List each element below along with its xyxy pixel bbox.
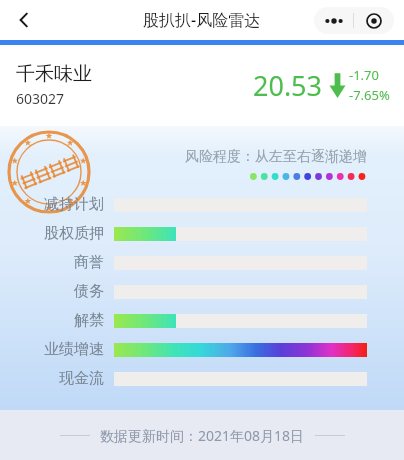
staticText: 20.53: [253, 67, 323, 104]
button[interactable]: 债务: [0, 277, 404, 306]
staticText: 业绩增速: [44, 340, 104, 359]
button[interactable]: 业绩增速: [0, 335, 404, 364]
staticText: 股权质押: [44, 224, 104, 243]
button[interactable]: More: [314, 7, 353, 34]
button[interactable]: 减持计划: [0, 190, 404, 219]
staticText: -1.70: [349, 66, 379, 84]
staticText: 数据更新时间：2021年08月18日: [100, 426, 305, 445]
button[interactable]: Close: [354, 7, 394, 34]
staticText: 商誉: [74, 253, 104, 272]
staticText: 603027: [16, 89, 65, 108]
staticText: 减持计划: [44, 195, 104, 214]
staticText: 风险程度：从左至右逐渐递增: [185, 148, 367, 166]
staticText: 千禾味业: [16, 62, 92, 86]
button[interactable]: 解禁: [0, 306, 404, 335]
staticText: 解禁: [74, 311, 104, 330]
staticText: 债务: [74, 282, 104, 301]
staticText: 现金流: [59, 369, 104, 388]
button[interactable]: 商誉: [0, 248, 404, 277]
staticText: 股扒扒-风险雷达: [143, 9, 261, 31]
button[interactable]: 千禾味业: [0, 45, 404, 125]
button[interactable]: Back: [6, 2, 42, 38]
button[interactable]: 股权质押: [0, 219, 404, 248]
staticText: -7.65%: [349, 86, 390, 104]
button[interactable]: 现金流: [0, 364, 404, 393]
